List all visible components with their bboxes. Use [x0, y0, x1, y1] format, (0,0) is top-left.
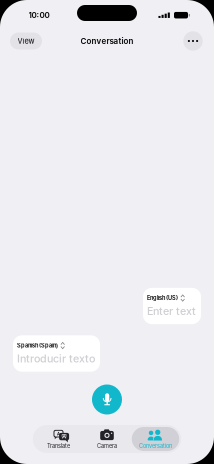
button[interactable]: English (US): [143, 288, 201, 324]
staticText: Translate: [47, 443, 70, 449]
button[interactable]: More options: [183, 31, 203, 51]
button[interactable]: Conversation: [132, 427, 179, 451]
staticText: Conversation: [139, 443, 172, 449]
staticText: Spanish (Spain): [17, 342, 58, 349]
staticText: 10:00: [28, 10, 49, 20]
staticText: Introducir texto: [17, 352, 95, 365]
staticText: View: [17, 37, 34, 45]
staticText: Conversation: [80, 36, 133, 46]
button[interactable]: View: [10, 32, 42, 49]
staticText: Camera: [97, 443, 117, 449]
button[interactable]: Translate: [35, 427, 82, 451]
staticText: English (US): [147, 295, 178, 301]
button[interactable]: Start recording: [92, 384, 122, 414]
button[interactable]: Camera: [83, 427, 131, 451]
staticText: Enter text: [147, 305, 196, 318]
button[interactable]: Spanish (Spain): [13, 335, 100, 372]
